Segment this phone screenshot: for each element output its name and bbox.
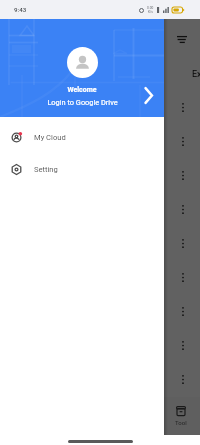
button[interactable]: Welcome <box>0 19 164 117</box>
button[interactable]: More options <box>172 294 194 328</box>
button[interactable]: More options <box>172 328 194 362</box>
button[interactable]: More options <box>172 396 194 430</box>
staticText: Explorer <box>192 69 200 80</box>
button[interactable]: My Cloud <box>0 121 164 153</box>
staticText: K/s <box>148 10 153 14</box>
button[interactable]: More options <box>172 124 194 158</box>
button[interactable]: More options <box>172 260 194 294</box>
button[interactable]: Login <box>137 84 159 106</box>
button[interactable]: Setting <box>0 153 164 185</box>
button[interactable]: More options <box>172 158 194 192</box>
staticText: 9:43 <box>14 6 27 13</box>
staticText: Setting <box>34 165 58 174</box>
button[interactable]: More options <box>172 192 194 226</box>
button[interactable]: More options <box>172 362 194 396</box>
staticText: Login to Google Drive <box>47 98 118 107</box>
button[interactable]: More options <box>172 90 194 124</box>
button[interactable]: More options <box>172 226 194 260</box>
button[interactable]: Tool <box>168 397 193 435</box>
staticText: Tool <box>175 419 187 426</box>
staticText: My Cloud <box>34 133 66 142</box>
staticText: Welcome <box>67 86 97 94</box>
button[interactable]: Menu <box>174 31 190 47</box>
staticText: 0.00 <box>147 6 154 10</box>
